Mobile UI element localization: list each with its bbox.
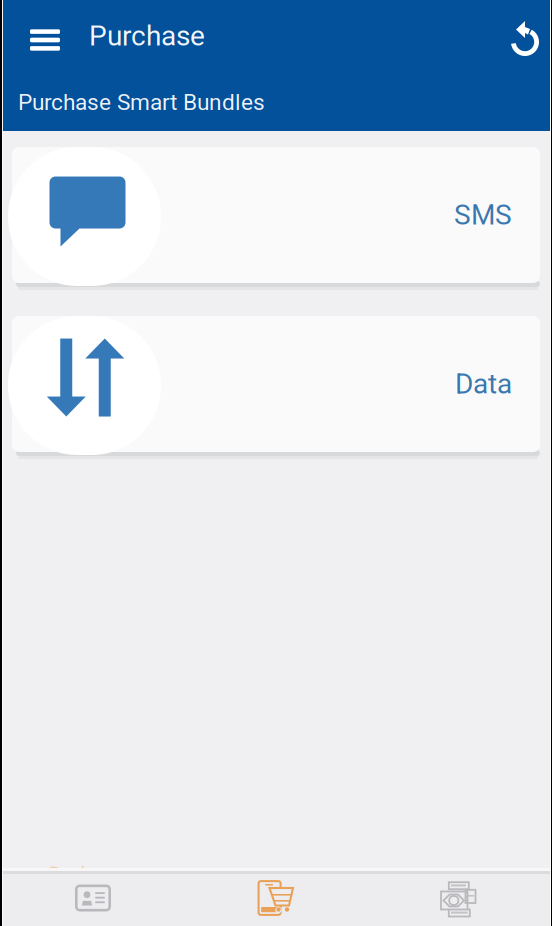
button[interactable]: SMS xyxy=(0,147,552,288)
button[interactable]: Data xyxy=(0,316,552,457)
button[interactable]: Scan xyxy=(368,874,552,926)
button[interactable]: Menu xyxy=(0,0,76,72)
button[interactable]: Refresh xyxy=(495,0,552,72)
staticText: Purchase Smart Bundles xyxy=(18,89,265,116)
button[interactable]: Accounts xyxy=(0,874,184,926)
staticText: Recharge xyxy=(48,862,111,906)
staticText: Data xyxy=(455,368,512,400)
staticText: SMS xyxy=(454,199,512,231)
button[interactable]: Purchase xyxy=(184,874,368,926)
staticText: Purchase xyxy=(89,20,205,52)
